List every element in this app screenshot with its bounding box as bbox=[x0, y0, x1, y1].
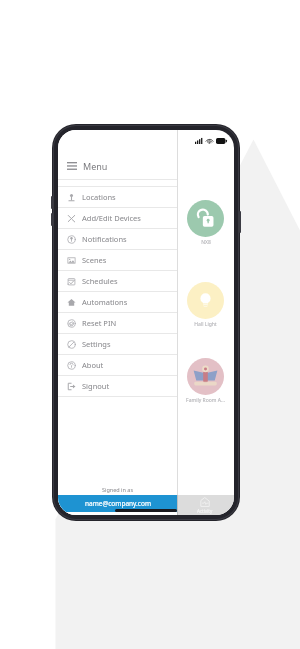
staticText: name@company.com bbox=[85, 499, 151, 508]
button[interactable]: Reset PIN bbox=[58, 313, 177, 333]
button[interactable]: Menu bbox=[58, 152, 177, 179]
staticText: Locations bbox=[82, 192, 116, 202]
staticText: Hall Light bbox=[194, 321, 217, 328]
staticText: Schedules bbox=[82, 276, 118, 286]
button[interactable]: NX8 bbox=[187, 200, 224, 246]
button[interactable]: About bbox=[58, 355, 177, 375]
button[interactable]: Family Room A… bbox=[186, 358, 225, 404]
button[interactable]: Notifications bbox=[58, 229, 177, 249]
button[interactable]: Locations bbox=[58, 187, 177, 207]
button[interactable]: Signout bbox=[58, 376, 177, 396]
staticText: Activity bbox=[197, 508, 213, 514]
button[interactable]: name@company.com bbox=[58, 495, 177, 512]
staticText: Settings bbox=[82, 339, 111, 349]
staticText: Family Room A… bbox=[186, 397, 225, 404]
button[interactable]: Automations bbox=[58, 292, 177, 312]
staticText: Automations bbox=[82, 297, 128, 307]
staticText: Signout bbox=[82, 381, 110, 391]
button[interactable]: Scenes bbox=[58, 250, 177, 270]
button[interactable]: Hall Light bbox=[187, 282, 224, 328]
staticText: About bbox=[82, 360, 104, 370]
button[interactable]: Schedules bbox=[58, 271, 177, 291]
staticText: Menu bbox=[83, 160, 108, 172]
staticText: Reset PIN bbox=[82, 318, 117, 328]
staticText: Notifications bbox=[82, 234, 127, 244]
button[interactable]: Settings bbox=[58, 334, 177, 354]
staticText: Add/Edit Devices bbox=[82, 213, 141, 223]
button[interactable]: Activity bbox=[175, 495, 234, 515]
staticText: Scenes bbox=[82, 255, 107, 265]
staticText: NX8 bbox=[201, 239, 211, 246]
button[interactable]: Add/Edit Devices bbox=[58, 208, 177, 228]
staticText: Signed in as bbox=[58, 486, 177, 493]
